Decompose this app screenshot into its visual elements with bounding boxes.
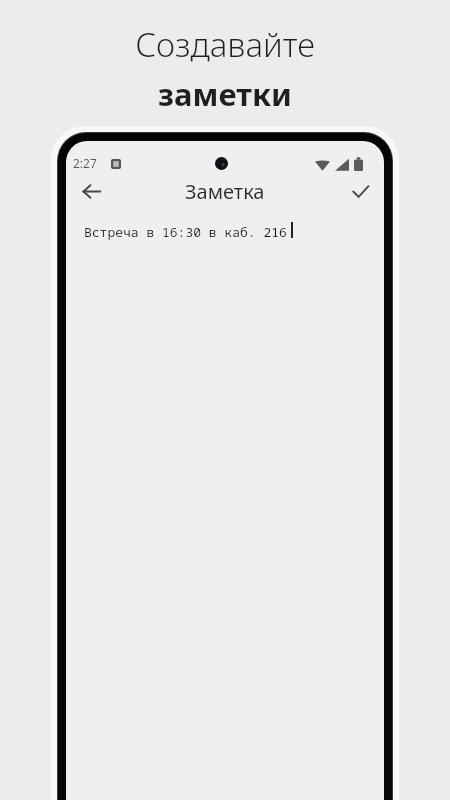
staticText: 2:27 (73, 155, 97, 171)
staticText: Встреча в 16:30 в каб. 216 (84, 223, 287, 241)
button[interactable]: Save note (341, 172, 379, 210)
button[interactable]: Встреча в 16:30 в каб. 216 (66, 209, 384, 800)
staticText: Создавайте (135, 22, 315, 67)
staticText: Заметка (185, 178, 265, 205)
staticText: заметки (158, 73, 292, 115)
button[interactable]: Back (71, 171, 111, 211)
